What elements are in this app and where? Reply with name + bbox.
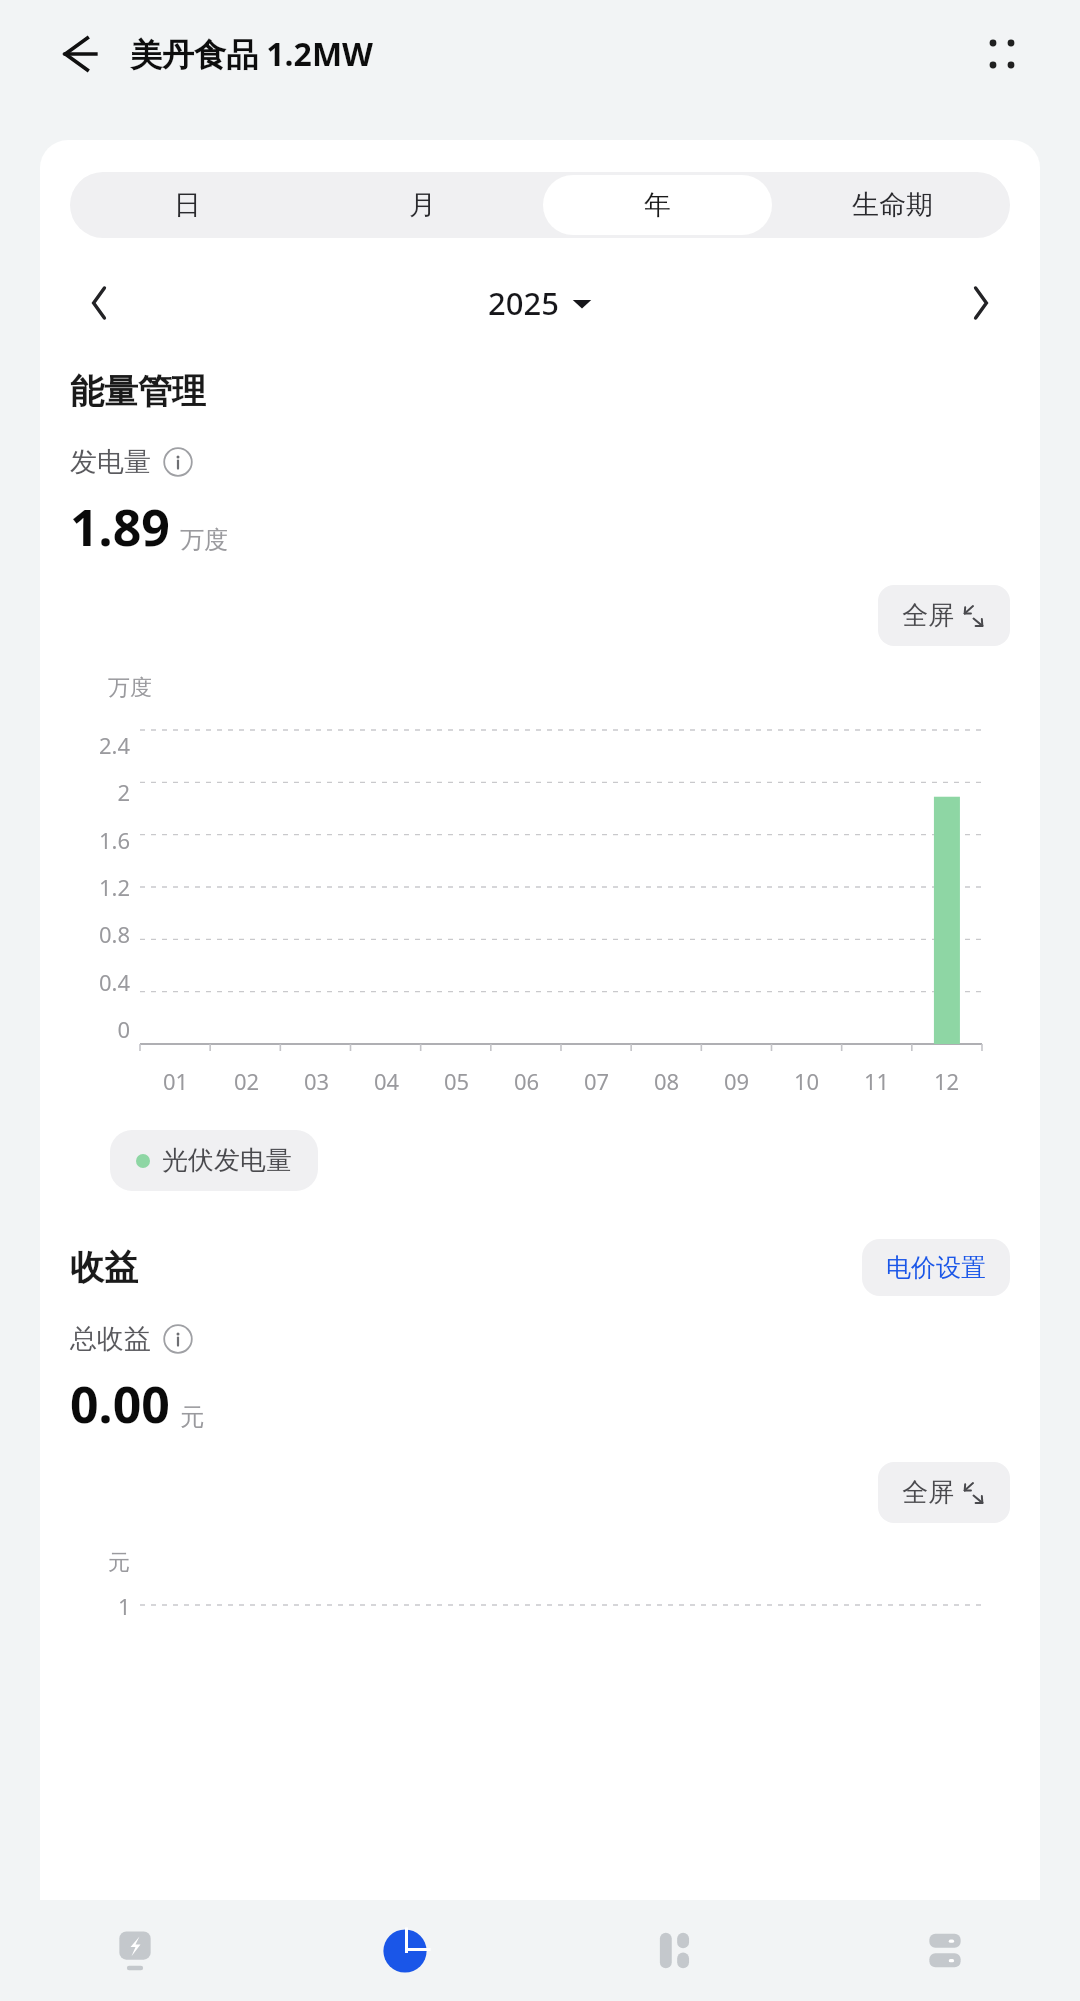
staticText: 万度 — [180, 525, 228, 555]
staticText: 09 — [724, 1066, 750, 1096]
button[interactable]: More options — [970, 22, 1034, 86]
staticText: 0.4 — [98, 967, 130, 997]
staticText: 月 — [409, 188, 436, 222]
staticText: 万度 — [108, 674, 152, 702]
staticText: 05 — [444, 1066, 470, 1096]
button[interactable]: Info — [163, 447, 193, 477]
staticText: 03 — [304, 1066, 330, 1096]
button[interactable]: 光伏发电量 — [110, 1130, 318, 1191]
staticText: 收益 — [70, 1246, 138, 1289]
staticText: 2.4 — [98, 730, 130, 760]
button[interactable]: 全屏 — [878, 585, 1010, 646]
staticText: 1.6 — [98, 825, 130, 855]
staticText: 元 — [108, 1549, 130, 1577]
button[interactable]: Previous year — [70, 274, 128, 332]
staticText: 0 — [117, 1014, 130, 1044]
staticText: 总收益 — [70, 1322, 151, 1356]
staticText: 元 — [180, 1402, 204, 1432]
staticText: 04 — [374, 1066, 400, 1096]
button[interactable]: Devices — [810, 1900, 1080, 2001]
button[interactable]: Energy — [0, 1900, 270, 2001]
staticText: 电价设置 — [886, 1252, 986, 1283]
button[interactable]: Dashboard — [540, 1900, 810, 2001]
button[interactable]: 日 — [73, 175, 302, 235]
staticText: 1 — [118, 1591, 131, 1621]
staticText: 全屏 — [902, 599, 954, 632]
staticText: 08 — [654, 1066, 680, 1096]
button[interactable]: Info — [163, 1324, 193, 1354]
button[interactable]: 电价设置 — [862, 1239, 1010, 1296]
staticText: 年 — [644, 188, 671, 222]
staticText: 全屏 — [902, 1476, 954, 1509]
staticText: 生命期 — [852, 188, 933, 222]
button[interactable]: 2025 — [488, 282, 593, 324]
staticText: 光伏发电量 — [162, 1144, 292, 1177]
staticText: 06 — [514, 1066, 540, 1096]
button[interactable]: 年 — [543, 175, 772, 235]
staticText: 2 — [117, 777, 130, 807]
button[interactable]: Next year — [952, 274, 1010, 332]
button[interactable]: 全屏 — [878, 1462, 1010, 1523]
button[interactable]: Back — [46, 22, 110, 86]
staticText: 11 — [864, 1066, 890, 1096]
staticText: 1.89 — [70, 493, 170, 561]
staticText: 0.8 — [98, 919, 130, 949]
staticText: 1.2 — [98, 872, 130, 902]
button[interactable]: 生命期 — [778, 175, 1007, 235]
staticText: 能量管理 — [70, 370, 206, 413]
staticText: 01 — [163, 1066, 189, 1096]
staticText: 日 — [174, 188, 201, 222]
staticText: 02 — [234, 1066, 260, 1096]
staticText: 10 — [794, 1066, 820, 1096]
staticText: 2025 — [488, 282, 559, 324]
staticText: 美丹食品 1.2MW — [130, 32, 374, 76]
staticText: 0.00 — [70, 1370, 170, 1438]
staticText: 发电量 — [70, 445, 151, 479]
button[interactable]: Statistics — [270, 1900, 540, 2001]
staticText: 07 — [584, 1066, 610, 1096]
button[interactable]: 月 — [308, 175, 537, 235]
staticText: 12 — [934, 1066, 960, 1096]
